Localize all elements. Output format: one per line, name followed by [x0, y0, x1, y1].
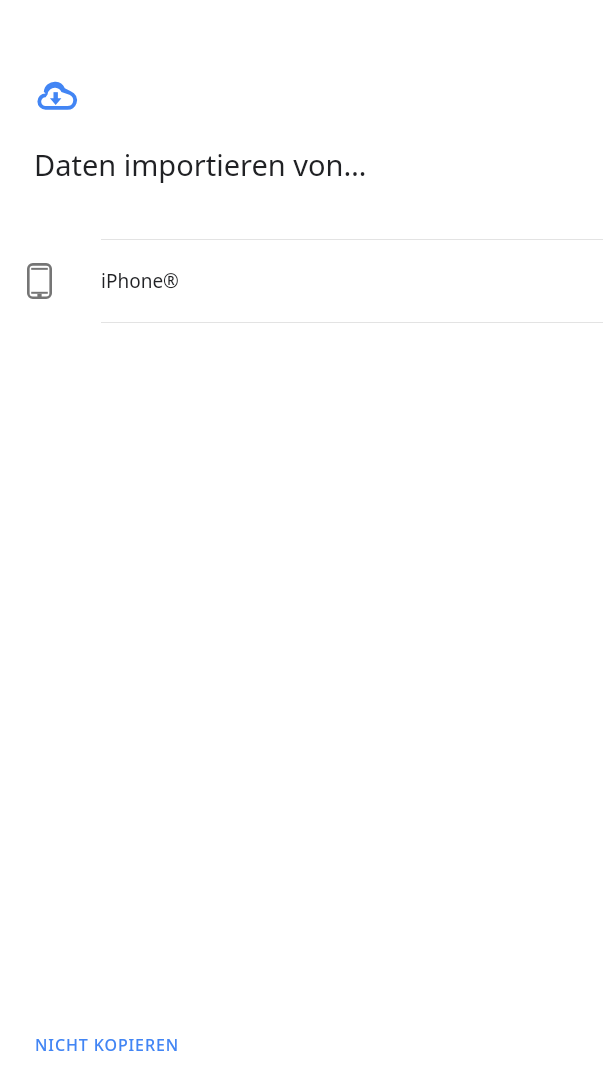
staticText: NICHT KOPIEREN — [35, 1034, 180, 1056]
other: Import data — [35, 80, 79, 112]
button[interactable]: NICHT KOPIEREN — [20, 1024, 195, 1066]
button[interactable]: iPhone® — [0, 240, 603, 322]
staticText: Daten importieren von… — [34, 145, 603, 184]
staticText: iPhone® — [101, 268, 179, 294]
